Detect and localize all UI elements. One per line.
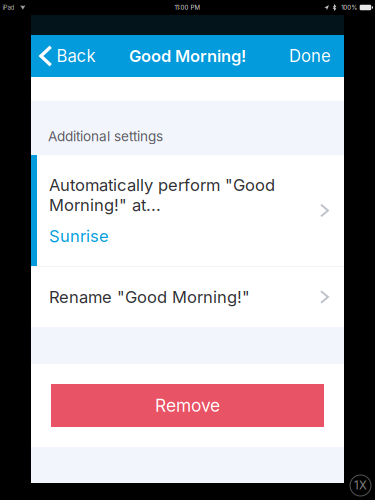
staticText: Automatically perform "Good Morning!" at… — [49, 175, 275, 215]
staticText: 11:00 PM — [174, 4, 200, 11]
staticText: iPad — [2, 4, 14, 11]
staticText: Done — [289, 46, 331, 66]
button[interactable]: Remove — [51, 384, 324, 427]
staticText: 1X — [354, 479, 367, 492]
staticText: Remove — [155, 395, 220, 416]
staticText: Back — [56, 46, 95, 66]
staticText: Good Morning! — [129, 46, 246, 66]
button[interactable]: Done — [276, 35, 344, 77]
button[interactable]: Rename "Good Morning!" — [31, 267, 344, 327]
button[interactable]: Automatically perform "Good Morning!" at… — [31, 155, 344, 266]
staticText: Rename "Good Morning!" — [49, 287, 250, 307]
button[interactable]: Back — [31, 35, 103, 77]
staticText: 100% — [341, 4, 357, 11]
button[interactable]: Scale — [350, 475, 371, 496]
staticText: Sunrise — [49, 226, 109, 246]
staticText: Additional settings — [48, 128, 163, 144]
